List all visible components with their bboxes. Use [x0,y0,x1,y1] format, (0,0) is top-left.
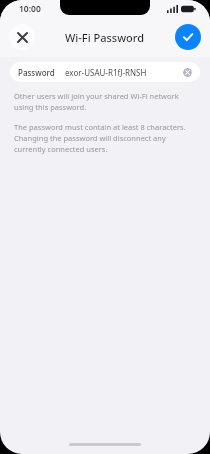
staticText: The password must contain at least 8 cha… [14,122,196,154]
staticText: Password [18,67,55,78]
button[interactable]: Save password [175,24,201,50]
staticText: Wi-Fi Password [65,30,145,45]
staticText: 10:00 [19,3,41,15]
button[interactable]: Close [9,24,35,50]
button[interactable]: Clear password [183,68,192,77]
staticText: Other users will join your shared Wi-Fi … [14,91,196,112]
staticText: exor-USAU-R1fJ-RNSH [65,67,147,78]
button[interactable]: Password [10,62,200,82]
